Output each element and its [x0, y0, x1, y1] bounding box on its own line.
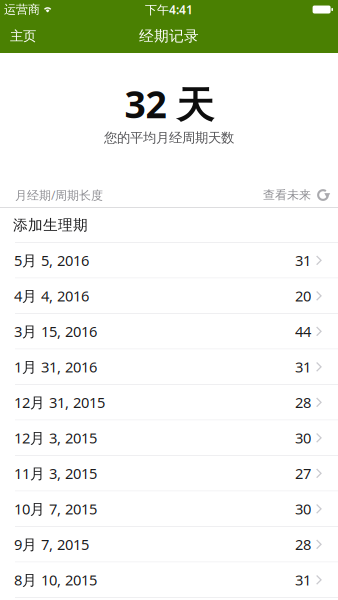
button[interactable]: 添加生理期 — [0, 208, 338, 243]
staticText: 您的平均月经周期天数 — [104, 130, 234, 146]
staticText: 11月 3, 2015 — [14, 463, 97, 483]
button[interactable]: 10月 7, 2015 — [0, 491, 338, 527]
staticText: 31 — [295, 250, 311, 270]
staticText: 5月 5, 2016 — [14, 250, 89, 270]
button[interactable]: 9月 7, 2015 — [0, 527, 338, 562]
staticText: 27 — [295, 463, 311, 483]
staticText: 运营商 — [4, 2, 40, 17]
staticText: 经期记录 — [139, 27, 199, 45]
staticText: 3月 15, 2016 — [14, 321, 97, 341]
staticText: 12月 3, 2015 — [14, 428, 97, 447]
button[interactable]: 4月 4, 2016 — [0, 278, 338, 314]
staticText: 10月 7, 2015 — [14, 499, 97, 518]
staticText: 9月 7, 2015 — [14, 534, 89, 554]
button[interactable]: 查看未来 — [263, 188, 331, 202]
staticText: 30 — [295, 428, 311, 447]
staticText: 4月 4, 2016 — [14, 286, 89, 305]
staticText: 月经期/周期长度 — [15, 187, 103, 203]
staticText: 28 — [295, 392, 311, 412]
staticText: 8月 10, 2015 — [14, 570, 97, 589]
staticText: 32 天 — [124, 79, 213, 129]
staticText: 44 — [295, 321, 311, 341]
button[interactable]: 12月 3, 2015 — [0, 420, 338, 456]
staticText: 添加生理期 — [13, 216, 88, 234]
button[interactable]: 主页 — [0, 19, 48, 53]
button[interactable]: 1月 31, 2016 — [0, 349, 338, 385]
staticText: 28 — [295, 534, 311, 554]
staticText: 1月 31, 2016 — [14, 357, 97, 376]
staticText: 主页 — [10, 28, 36, 44]
button[interactable]: 8月 10, 2015 — [0, 562, 338, 598]
staticText: 30 — [295, 499, 311, 518]
staticText: 查看未来 — [263, 188, 311, 202]
staticText: 31 — [295, 357, 311, 376]
button[interactable]: 12月 31, 2015 — [0, 385, 338, 420]
button[interactable]: 11月 3, 2015 — [0, 456, 338, 491]
button[interactable]: 5月 5, 2016 — [0, 243, 338, 278]
staticText: 下午4:41 — [145, 1, 193, 17]
staticText: 12月 31, 2015 — [14, 392, 105, 412]
button[interactable]: 3月 15, 2016 — [0, 314, 338, 349]
staticText: 31 — [295, 570, 311, 589]
staticText: 20 — [295, 286, 311, 305]
